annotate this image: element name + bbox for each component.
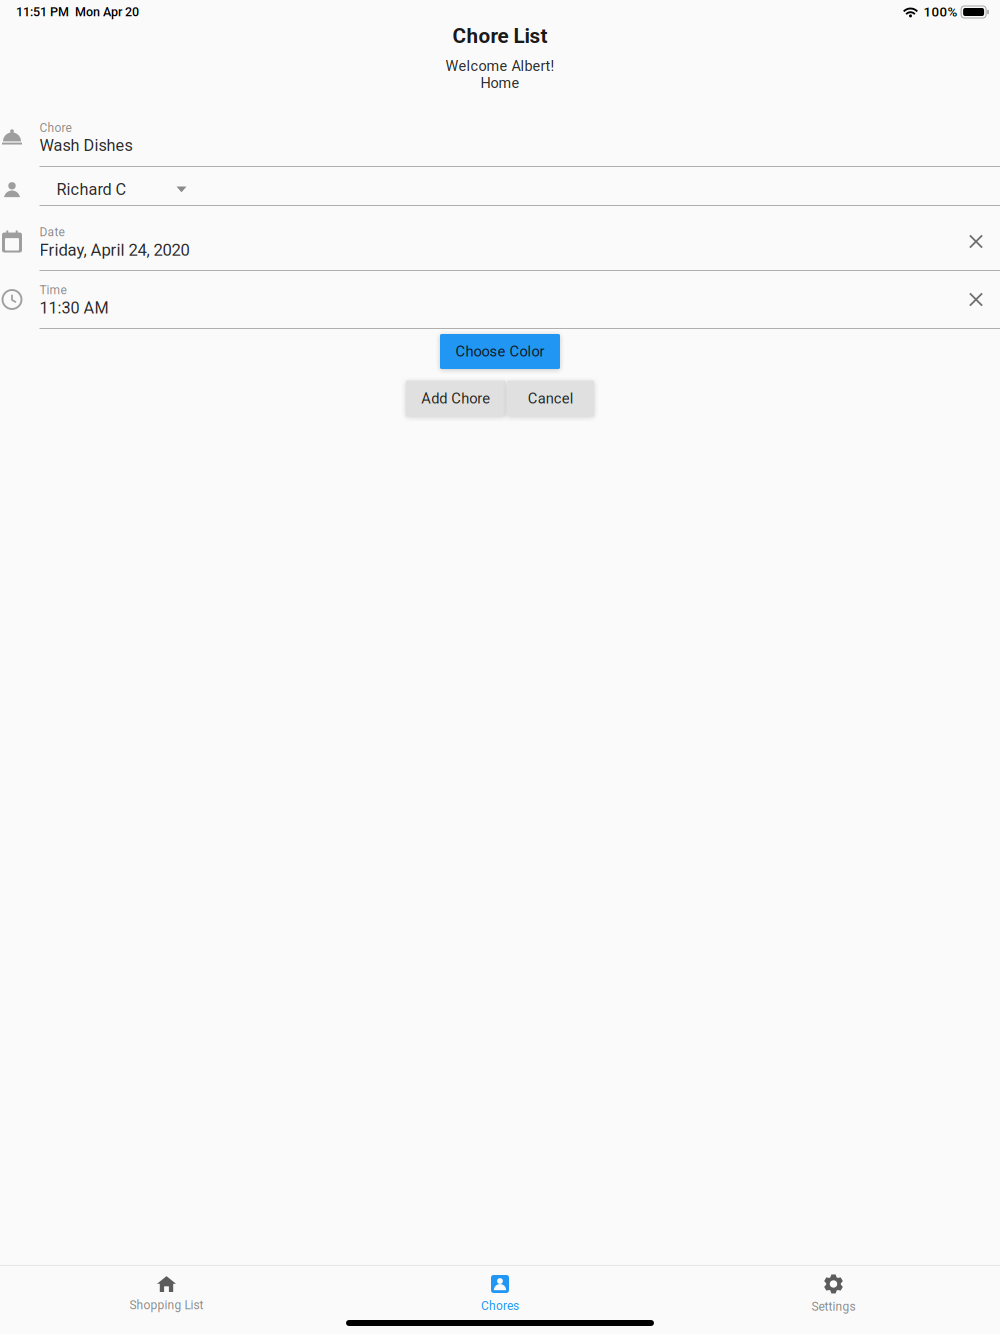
staticText: Date	[39, 225, 64, 239]
staticText: Friday, April 24, 2020	[39, 240, 189, 260]
staticText: Chore	[39, 121, 71, 135]
button[interactable]: Chores	[333, 1266, 667, 1322]
button[interactable]: Cancel	[507, 380, 594, 416]
button[interactable]: Settings	[667, 1266, 1000, 1322]
staticText: Chore List	[452, 24, 547, 48]
staticText: Cancel	[528, 390, 574, 407]
staticText: Mon Apr 20	[75, 5, 139, 19]
staticText: Richard C	[56, 180, 126, 199]
staticText: 11:51 PM	[16, 5, 69, 19]
staticText: 11:30 AM	[39, 298, 108, 317]
button[interactable]: Chore	[39, 116, 1000, 160]
button[interactable]: Add Chore	[406, 380, 506, 416]
button[interactable]: Time	[39, 278, 939, 322]
button[interactable]: Richard C	[56, 173, 246, 205]
staticText: Shopping List	[129, 1298, 203, 1312]
button[interactable]: Shopping List	[0, 1266, 333, 1322]
button[interactable]: Clear time	[954, 277, 998, 321]
staticText: Wash Dishes	[39, 136, 132, 155]
button[interactable]: Choose Color	[440, 334, 560, 369]
staticText: 100%	[923, 4, 957, 20]
staticText: Home	[480, 75, 519, 91]
button[interactable]: Date	[39, 220, 939, 264]
staticText: Add Chore	[421, 390, 490, 407]
staticText: Settings	[811, 1300, 855, 1314]
staticText: Time	[39, 283, 66, 297]
button[interactable]: Clear date	[954, 219, 998, 263]
staticText: Chores	[481, 1299, 519, 1313]
staticText: Welcome Albert!	[445, 58, 554, 74]
staticText: Choose Color	[455, 343, 544, 360]
